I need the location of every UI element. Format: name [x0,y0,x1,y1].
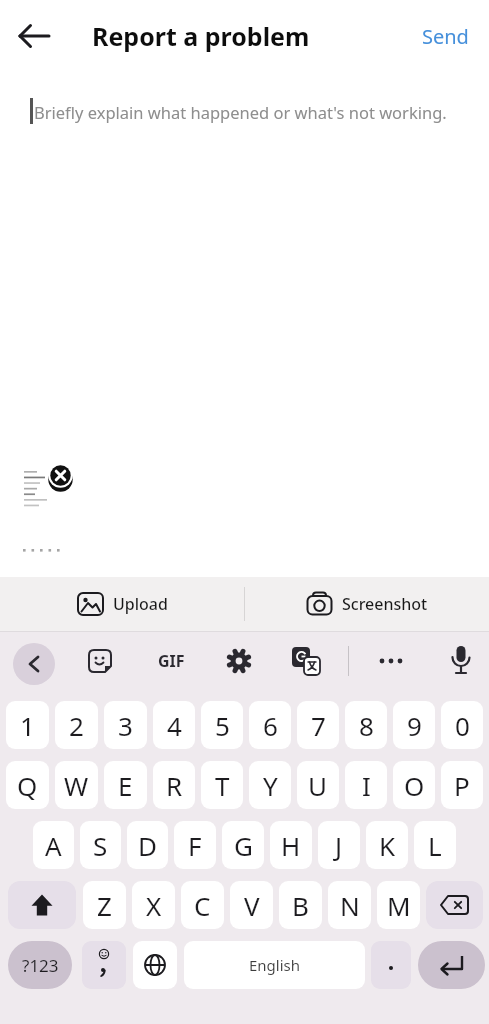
staticText: F [188,828,202,863]
button[interactable]: Upload [0,577,244,631]
staticText: T [215,768,230,803]
button[interactable] [0,0,70,72]
button[interactable]: 1 [6,701,49,749]
button[interactable]: 3 [104,701,147,749]
staticText: K [379,828,396,863]
button[interactable]: 2 [55,701,98,749]
staticText: Y [263,768,278,803]
staticText: Report a problem [92,19,310,53]
button[interactable]: 8 [345,701,387,749]
button[interactable]: 6 [249,701,291,749]
button[interactable]: 5 [201,701,243,749]
button[interactable] [426,881,483,929]
button[interactable]: GIF [150,632,192,690]
button[interactable] [418,941,485,989]
staticText: A [45,828,62,863]
button[interactable]: C [181,881,224,929]
button[interactable] [13,643,55,685]
button[interactable] [284,639,330,683]
staticText: Briefly explain what happened or what's … [34,101,447,123]
staticText: V [244,888,260,923]
staticText: Send [422,23,469,50]
staticText: E [118,768,133,803]
staticText: 1 [20,708,35,743]
staticText: N [340,888,360,923]
staticText: D [138,828,157,863]
staticText: M [387,888,411,923]
staticText: English [249,955,301,975]
button[interactable]: P [441,761,483,809]
button[interactable] [8,881,76,929]
button[interactable] [46,461,76,491]
staticText: 7 [311,708,326,743]
button[interactable]: R [153,761,195,809]
button[interactable]: D [127,821,168,869]
button[interactable] [438,639,484,683]
button[interactable]: E [104,761,147,809]
button[interactable]: W [55,761,98,809]
button[interactable]: N [328,881,371,929]
button[interactable]: T [201,761,243,809]
staticText: Z [97,888,112,923]
button[interactable]: Screenshot [244,577,489,631]
button[interactable]: 4 [153,701,195,749]
button[interactable]: English [184,941,365,989]
staticText: L [428,828,442,863]
button[interactable]: J [318,821,360,869]
staticText: 9 [407,708,422,743]
staticText: GIF [158,650,185,672]
button[interactable]: X [132,881,175,929]
staticText: O [404,768,425,803]
staticText: R [166,768,183,803]
button[interactable]: I [345,761,387,809]
button[interactable]: V [230,881,273,929]
staticText: 2 [69,708,84,743]
staticText: 4 [167,708,182,743]
button[interactable]: 0 [441,701,483,749]
staticText: Screenshot [342,593,428,615]
staticText: C [194,888,211,923]
button[interactable]: G [222,821,264,869]
staticText: 8 [359,708,374,743]
staticText: I [362,768,371,803]
button[interactable]: 9 [393,701,435,749]
staticText: U [308,768,328,803]
button[interactable]: B [279,881,322,929]
button[interactable]: O [393,761,435,809]
staticText: X [146,888,162,923]
staticText: 5 [215,708,230,743]
button[interactable] [217,639,261,683]
button[interactable]: ?123 [8,941,72,989]
staticText: G [234,828,253,863]
staticText: ?123 [22,954,59,977]
button[interactable]: 7 [297,701,339,749]
button[interactable]: L [414,821,456,869]
button[interactable]: Z [83,881,126,929]
button[interactable]: K [366,821,408,869]
staticText: J [335,828,343,863]
button[interactable]: F [174,821,216,869]
button[interactable]: H [270,821,312,869]
staticText: S [93,828,108,863]
staticText: Q [17,768,38,803]
staticText: W [64,768,89,803]
staticText: H [281,828,301,863]
staticText: P [454,768,470,803]
button[interactable] [133,941,177,989]
button[interactable]: U [297,761,339,809]
staticText: 0 [455,708,470,743]
button[interactable] [371,941,411,989]
button[interactable]: M [377,881,420,929]
button[interactable] [369,639,413,683]
staticText: 6 [263,708,278,743]
button[interactable]: A [33,821,74,869]
button[interactable] [80,639,124,683]
staticText: 3 [118,708,133,743]
staticText: Upload [113,593,168,615]
button[interactable]: Send [416,17,475,56]
button[interactable] [82,941,126,989]
staticText: B [292,888,309,923]
button[interactable]: Y [249,761,291,809]
button[interactable]: Q [6,761,49,809]
button[interactable]: S [80,821,121,869]
